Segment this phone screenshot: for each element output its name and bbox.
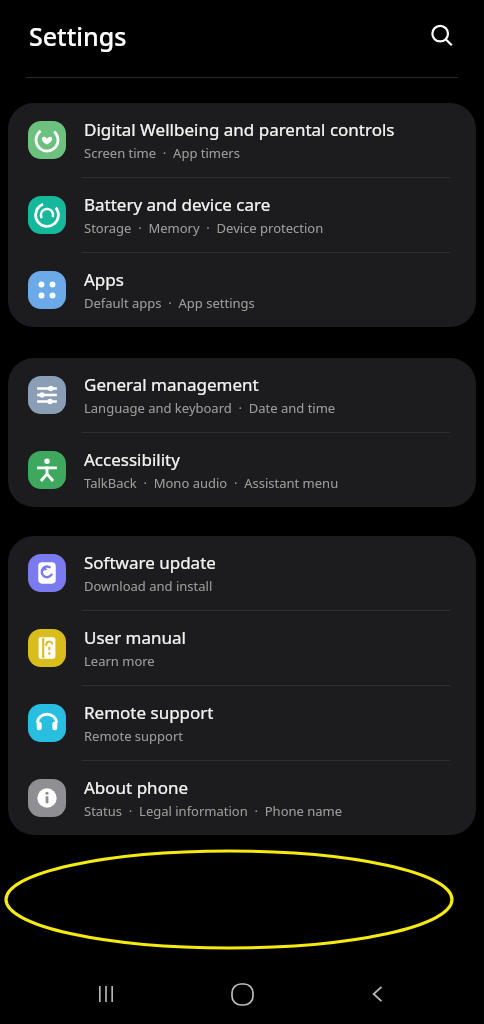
staticText: Remote support xyxy=(84,727,184,745)
button[interactable]: Search xyxy=(422,16,462,56)
staticText: User manual xyxy=(84,626,186,649)
staticText: Screen time · App timers xyxy=(84,144,240,162)
button[interactable]: User manual xyxy=(8,611,476,685)
button[interactable]: Digital Wellbeing and parental controls xyxy=(8,103,476,177)
staticText: Learn more xyxy=(84,652,155,670)
button[interactable]: Home xyxy=(212,964,272,1024)
staticText: Default apps · App settings xyxy=(84,294,255,312)
staticText: Digital Wellbeing and parental controls xyxy=(84,118,395,141)
staticText: TalkBack · Mono audio · Assistant menu xyxy=(84,474,339,492)
staticText: Battery and device care xyxy=(84,193,271,216)
button[interactable]: Back xyxy=(348,964,408,1024)
button[interactable]: Recent apps xyxy=(76,964,136,1024)
button[interactable]: Software update xyxy=(8,536,476,610)
staticText: General management xyxy=(84,373,259,396)
button[interactable]: Apps xyxy=(8,253,476,327)
button[interactable]: Accessibility xyxy=(8,433,476,507)
staticText: Apps xyxy=(84,268,124,291)
staticText: Status · Legal information · Phone name xyxy=(84,802,343,820)
staticText: Download and install xyxy=(84,577,213,595)
staticText: Accessibility xyxy=(84,448,180,471)
staticText: About phone xyxy=(84,776,189,799)
button[interactable]: General management xyxy=(8,358,476,432)
button[interactable]: Remote support xyxy=(8,686,476,760)
staticText: Software update xyxy=(84,551,216,574)
staticText: Remote support xyxy=(84,701,214,724)
staticText: Settings xyxy=(29,19,127,53)
button[interactable]: Battery and device care xyxy=(8,178,476,252)
button[interactable]: About phone xyxy=(8,761,476,835)
staticText: Language and keyboard · Date and time xyxy=(84,399,336,417)
staticText: Storage · Memory · Device protection xyxy=(84,219,324,237)
